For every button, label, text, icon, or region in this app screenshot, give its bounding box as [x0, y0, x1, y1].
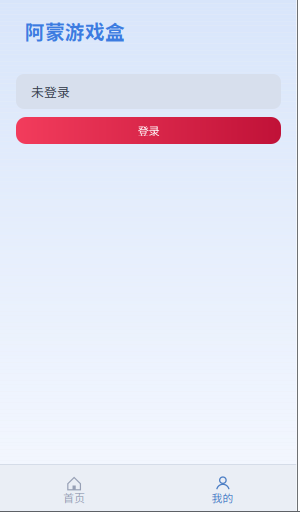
staticText: 未登录 — [31, 82, 70, 101]
button[interactable]: 登录 — [16, 117, 281, 144]
staticText: 首页 — [63, 490, 85, 505]
staticText: 登录 — [137, 122, 159, 139]
staticText: 阿蒙游戏盒 — [25, 17, 125, 45]
button[interactable]: 我的 — [148, 465, 296, 512]
button[interactable]: 首页 — [0, 465, 148, 512]
staticText: 我的 — [211, 490, 233, 505]
